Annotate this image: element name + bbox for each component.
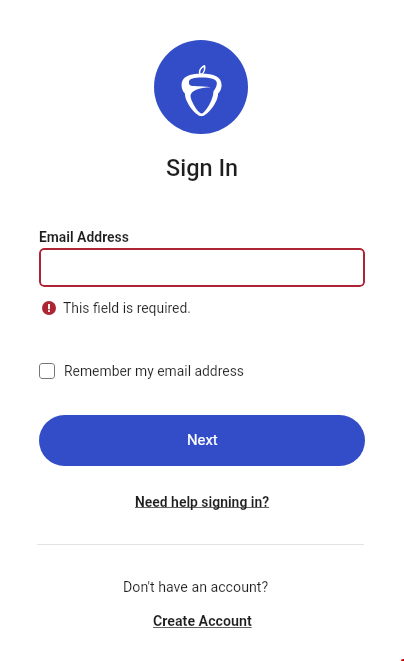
staticText: Don't have an account?	[123, 579, 269, 596]
staticText: Email Address	[39, 229, 129, 245]
button[interactable]: Remember my email address	[39, 363, 244, 379]
button[interactable]: Next	[39, 415, 365, 466]
button[interactable]: Email Address	[39, 248, 365, 287]
button[interactable]: Help chat	[401, 659, 404, 661]
staticText: Remember my email address	[64, 363, 244, 379]
staticText: Sign In	[166, 154, 239, 182]
button[interactable]: Need help signing in?	[135, 494, 270, 510]
staticText: Next	[187, 431, 218, 448]
staticText: This field is required.	[63, 300, 191, 316]
button[interactable]: Create Account	[153, 613, 252, 630]
